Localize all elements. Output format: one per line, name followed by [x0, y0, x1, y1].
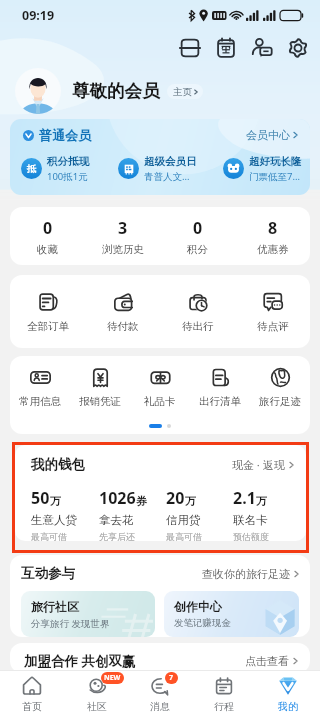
staticText: 0 [43, 217, 53, 239]
staticText: 7 [169, 673, 174, 683]
staticText: 互动参与 [21, 565, 75, 582]
staticText: 尊敬的会员 [72, 80, 160, 102]
staticText: 最高可借 [166, 531, 202, 541]
staticText: 预估额度 [233, 531, 269, 541]
staticText: 加盟合作 共创双赢 [24, 652, 136, 670]
button[interactable]: 0 [10, 207, 85, 265]
staticText: 发笔记赚现金 [174, 617, 231, 629]
staticText: 先享后还 [99, 531, 135, 541]
button[interactable]: 会员中心 [246, 128, 298, 142]
staticText: 超好玩长隆 [249, 155, 302, 168]
button[interactable]: Settings [280, 31, 316, 65]
staticText: 拿去花 [99, 513, 134, 527]
staticText: 生意人贷 [31, 513, 77, 527]
staticText: 3 [118, 217, 128, 239]
button[interactable]: 我的 [256, 671, 320, 715]
button[interactable]: 普通会员 [10, 119, 310, 195]
button[interactable]: 超级会员日 [118, 151, 223, 186]
button[interactable]: 1026 [99, 487, 166, 541]
staticText: NEW [104, 673, 121, 683]
staticText: 浏览历史 [102, 243, 144, 256]
staticText: 待点评 [257, 320, 289, 333]
staticText: 抵 [27, 163, 36, 174]
button[interactable]: 待出行 [160, 275, 235, 348]
staticText: 全部订单 [27, 320, 69, 333]
staticText: 8 [268, 217, 278, 239]
staticText: 20 [166, 487, 185, 509]
staticText: 万 [185, 494, 196, 508]
button[interactable]: 超好玩长隆 [223, 151, 310, 186]
staticText: 普通会员 [39, 127, 91, 143]
staticText: 1026 [99, 487, 136, 509]
staticText: 0 [193, 217, 203, 239]
staticText: 行程 [214, 700, 234, 713]
staticText: 联名卡 [233, 513, 268, 527]
button[interactable]: 2.1 [233, 487, 300, 541]
button[interactable]: 主页 [167, 84, 203, 99]
button[interactable]: 加盟合作 共创双赢 [10, 643, 310, 673]
staticText: 旅行社区 [31, 599, 79, 614]
staticText: 券 [136, 494, 147, 508]
staticText: 礼品卡 [144, 395, 176, 408]
staticText: 现金 · 返现 [232, 457, 285, 472]
staticText: 点击查看 [245, 654, 289, 668]
button[interactable]: NEW [64, 671, 128, 715]
button[interactable]: 全部订单 [10, 275, 85, 348]
staticText: 2.1 [233, 487, 256, 509]
button[interactable]: 首页 [0, 671, 64, 715]
staticText: 消息 [150, 700, 170, 713]
button[interactable]: 7 [128, 671, 192, 715]
staticText: 常用信息 [19, 395, 61, 408]
staticText: 社区 [87, 700, 107, 713]
button[interactable]: 20 [166, 487, 233, 541]
staticText: 我的钱包 [31, 456, 85, 473]
button[interactable]: 出行清单 [190, 356, 250, 418]
staticText: 首页 [22, 700, 42, 713]
button[interactable]: 行程 [192, 671, 256, 715]
staticText: 积分 [187, 243, 208, 256]
button[interactable]: 创作中心 [164, 591, 299, 637]
staticText: 会员中心 [246, 128, 290, 142]
button[interactable]: 0 [160, 207, 235, 265]
staticText: 青普人文… [144, 170, 190, 183]
staticText: 万 [256, 494, 267, 508]
button[interactable]: Customer service [244, 31, 280, 65]
staticText: 09:19 [22, 7, 55, 24]
button[interactable]: 50 [31, 487, 99, 541]
staticText: 信用贷 [166, 513, 201, 527]
button[interactable]: Check in [208, 31, 244, 65]
button[interactable]: 礼品卡 [130, 356, 190, 418]
button[interactable]: 旅行社区 [21, 591, 155, 637]
button[interactable]: 待付款 [85, 275, 160, 348]
staticText: 50 [31, 487, 50, 509]
button[interactable]: 抵 [21, 151, 118, 186]
button[interactable]: 3 [85, 207, 160, 265]
button[interactable]: 报销凭证 [70, 356, 130, 418]
staticText: 超级会员日 [144, 155, 197, 168]
button[interactable]: 8 [235, 207, 310, 265]
staticText: 我的 [278, 700, 298, 713]
staticText: 分享旅行 发现世界 [31, 617, 110, 630]
staticText: 门票低至7… [249, 170, 300, 183]
button[interactable]: 待点评 [235, 275, 310, 348]
staticText: 旅行足迹 [259, 395, 301, 408]
staticText: 万 [50, 494, 61, 508]
staticText: 待出行 [182, 320, 214, 333]
button[interactable]: 旅行足迹 [250, 356, 310, 418]
staticText: 出行清单 [199, 395, 241, 408]
staticText: 积分抵现 [47, 155, 89, 168]
staticText: 报销凭证 [79, 395, 121, 408]
staticText: 待付款 [107, 320, 139, 333]
staticText: 主页 [173, 86, 192, 98]
staticText: 收藏 [37, 243, 58, 256]
staticText: 创作中心 [174, 599, 222, 614]
button[interactable]: Split screen [172, 31, 208, 65]
staticText: 100抵1元 [47, 170, 88, 183]
button[interactable]: 常用信息 [10, 356, 70, 418]
staticText: 查收你的旅行足迹 [202, 567, 290, 581]
staticText: 最高可借 [31, 531, 67, 541]
button[interactable]: 我的钱包 [15, 445, 306, 541]
staticText: 优惠券 [257, 243, 289, 256]
